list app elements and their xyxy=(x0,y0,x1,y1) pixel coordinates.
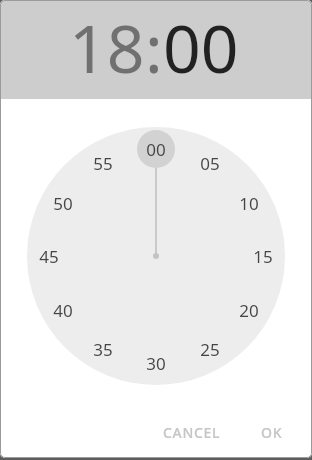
staticText: 40 xyxy=(53,299,73,322)
button[interactable]: 25 xyxy=(190,335,230,363)
staticText: 30 xyxy=(146,352,166,375)
button[interactable]: OK xyxy=(245,413,299,452)
staticText: 00 xyxy=(163,2,239,92)
button[interactable]: 05 xyxy=(190,149,230,177)
button[interactable]: 10 xyxy=(229,189,269,217)
button[interactable]: 35 xyxy=(83,335,123,363)
button[interactable]: 20 xyxy=(229,296,269,324)
button[interactable]: 00 xyxy=(136,135,176,163)
staticText: 10 xyxy=(239,192,259,215)
button[interactable]: 50 xyxy=(43,189,83,217)
staticText: : xyxy=(145,2,163,92)
staticText: 25 xyxy=(200,338,220,361)
staticText: 50 xyxy=(53,192,73,215)
staticText: CANCEL xyxy=(163,423,221,442)
staticText: 35 xyxy=(93,338,113,361)
button[interactable]: 15 xyxy=(243,242,283,270)
button[interactable]: 30 xyxy=(136,349,176,377)
staticText: 15 xyxy=(253,245,273,268)
button[interactable]: 55 xyxy=(83,149,123,177)
staticText: 45 xyxy=(39,245,59,268)
staticText: 20 xyxy=(239,299,259,322)
staticText: OK xyxy=(261,423,283,442)
staticText: 05 xyxy=(200,152,220,175)
button[interactable]: 45 xyxy=(29,242,69,270)
staticText: 00 xyxy=(146,138,166,161)
staticText: 55 xyxy=(93,152,113,175)
button[interactable]: CANCEL xyxy=(147,413,237,452)
button[interactable]: 40 xyxy=(43,296,83,324)
staticText: 18 xyxy=(69,2,145,92)
